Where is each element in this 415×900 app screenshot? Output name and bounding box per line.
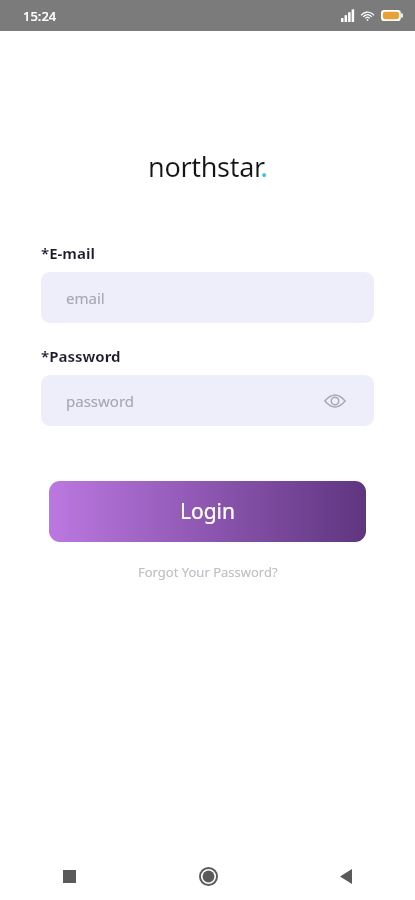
staticText: Login: [180, 497, 236, 526]
staticText: 15:24: [23, 7, 57, 25]
staticText: northstar.: [148, 148, 268, 185]
button[interactable]: Back: [277, 852, 415, 900]
staticText: email: [66, 288, 105, 308]
button[interactable]: Forgot Your Password?: [132, 560, 284, 584]
button[interactable]: Home: [139, 852, 277, 900]
button[interactable]: email: [41, 272, 374, 323]
button[interactable]: Login: [49, 481, 366, 542]
button[interactable]: Show password: [322, 388, 348, 414]
staticText: Forgot Your Password?: [138, 563, 278, 581]
button[interactable]: Recent apps: [0, 852, 139, 900]
staticText: password: [66, 391, 134, 411]
button[interactable]: password: [41, 375, 374, 426]
staticText: *E-mail: [41, 243, 95, 263]
staticText: *Password: [41, 346, 121, 366]
